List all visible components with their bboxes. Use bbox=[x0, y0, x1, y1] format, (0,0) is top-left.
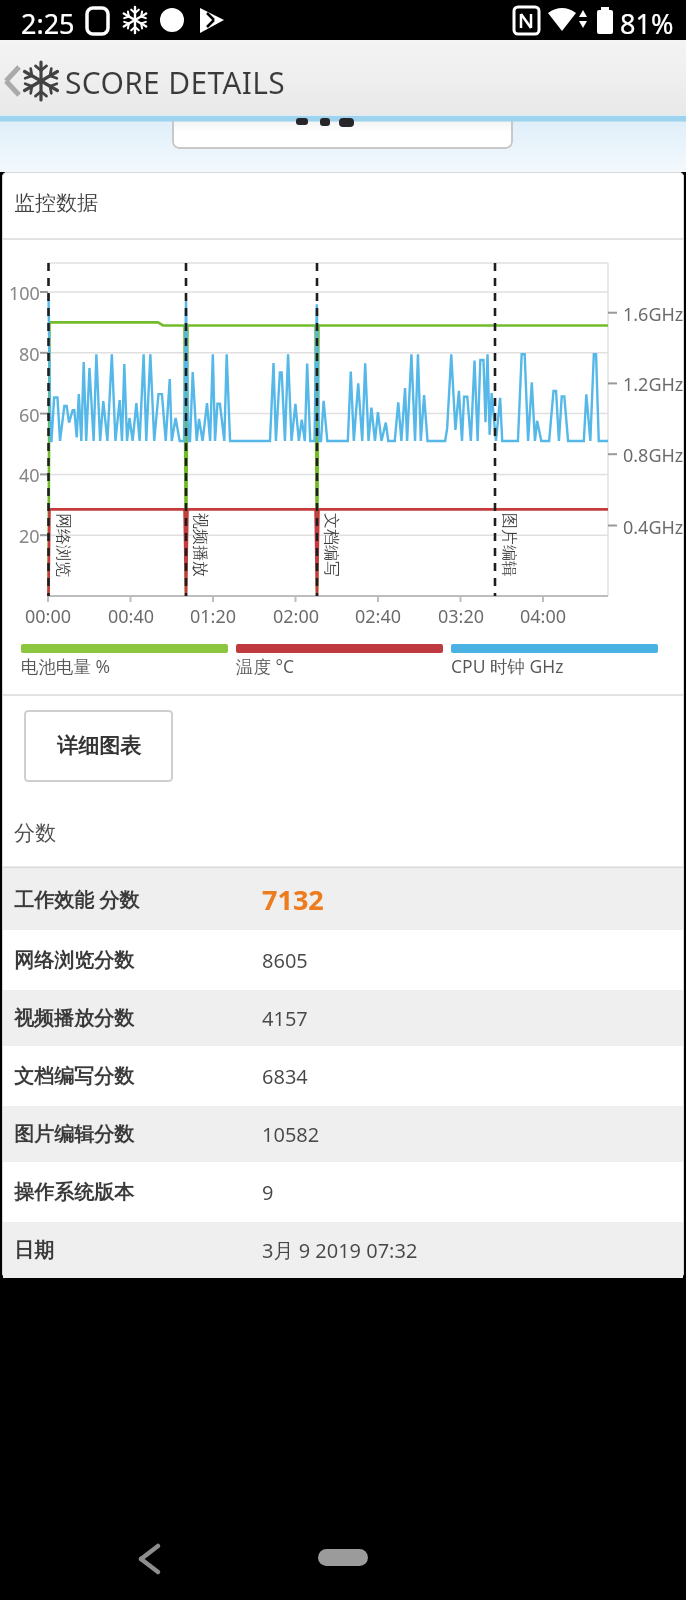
staticText: 00:00 bbox=[25, 604, 72, 628]
staticText: 03:20 bbox=[438, 604, 485, 628]
button[interactable] bbox=[308, 1535, 378, 1581]
button[interactable] bbox=[120, 1530, 180, 1586]
button[interactable]: 操作系统版本 bbox=[3, 1164, 683, 1220]
staticText: 8605 bbox=[262, 947, 308, 974]
staticText: 0.4GHz bbox=[623, 515, 684, 540]
staticText: 00:40 bbox=[108, 604, 155, 628]
staticText: 0.8GHz bbox=[623, 443, 684, 468]
staticText: 2:25 bbox=[21, 5, 75, 42]
staticText: CPU 时钟 GHz bbox=[451, 654, 564, 678]
button[interactable]: 文档编写分数 bbox=[3, 1048, 683, 1104]
staticText: SCORE DETAILS bbox=[65, 62, 285, 103]
staticText: 81% bbox=[620, 5, 674, 42]
staticText: 工作效能 分数 bbox=[14, 886, 140, 913]
staticText: 7132 bbox=[262, 881, 324, 918]
staticText: 视频播放分数 bbox=[14, 1006, 134, 1031]
staticText: 操作系统版本 bbox=[14, 1180, 134, 1205]
staticText: 1.6GHz bbox=[623, 302, 684, 327]
staticText: 详细图表 bbox=[57, 733, 141, 759]
staticText: 3月 9 2019 07:32 bbox=[262, 1237, 418, 1264]
button[interactable]: 图片编辑分数 bbox=[3, 1106, 683, 1162]
staticText: 9 bbox=[262, 1179, 274, 1206]
staticText: 温度 °C bbox=[236, 654, 295, 678]
staticText: 文档编写分数 bbox=[14, 1064, 134, 1089]
staticText: 10582 bbox=[262, 1121, 320, 1148]
staticText: 网络浏览分数 bbox=[14, 948, 134, 973]
staticText: 60 bbox=[19, 403, 40, 425]
staticText: 100 bbox=[9, 281, 40, 303]
staticText: 6834 bbox=[262, 1063, 308, 1090]
staticText: 01:20 bbox=[190, 604, 237, 628]
staticText: 04:00 bbox=[520, 604, 567, 628]
staticText: 80 bbox=[19, 342, 40, 364]
button[interactable] bbox=[0, 46, 64, 112]
staticText: 02:00 bbox=[273, 604, 320, 628]
staticText: 监控数据 bbox=[14, 190, 98, 216]
staticText: 20 bbox=[19, 524, 40, 546]
staticText: 4157 bbox=[262, 1005, 308, 1032]
button[interactable]: 工作效能 分数 bbox=[3, 869, 683, 930]
staticText: 02:40 bbox=[355, 604, 402, 628]
button[interactable]: 日期 bbox=[3, 1222, 683, 1278]
button[interactable]: 网络浏览分数 bbox=[3, 932, 683, 988]
staticText: 分数 bbox=[14, 820, 56, 846]
staticText: 图片编辑分数 bbox=[14, 1122, 134, 1147]
button[interactable]: 视频播放分数 bbox=[3, 990, 683, 1046]
button[interactable]: 详细图表 bbox=[24, 710, 173, 782]
staticText: 1.2GHz bbox=[623, 372, 684, 397]
staticText: 40 bbox=[19, 463, 40, 485]
staticText: 日期 bbox=[14, 1238, 54, 1263]
staticText: 电池电量 % bbox=[21, 654, 111, 678]
